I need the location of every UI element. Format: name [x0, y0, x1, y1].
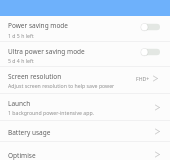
staticText: Optimise [8, 151, 36, 160]
staticText: 1 background power-intensive app. [8, 109, 94, 116]
button[interactable]: Open Optimise [154, 151, 161, 158]
staticText: Battery usage [8, 128, 51, 137]
button[interactable] [0, 94, 170, 120]
button[interactable]: Open Launch [154, 104, 161, 111]
staticText: Screen resolution [8, 72, 62, 81]
staticText: Power saving mode [8, 21, 69, 30]
staticText: Launch [8, 99, 31, 108]
button[interactable]: Toggle [141, 48, 160, 56]
button[interactable] [0, 16, 170, 41]
button[interactable]: Open Battery usage [154, 128, 161, 135]
button[interactable]: Toggle [141, 23, 160, 31]
staticText: 1 d 5 h left [8, 32, 34, 39]
button[interactable] [0, 67, 170, 92]
staticText: Adjust screen resolution to help save po… [8, 82, 115, 89]
staticText: FHD+ [136, 75, 150, 82]
button[interactable] [0, 42, 170, 66]
button[interactable] [0, 142, 170, 160]
staticText: Ultra power saving mode [8, 47, 85, 56]
staticText: 5 d 4 h left [8, 57, 34, 64]
button[interactable] [0, 121, 170, 141]
